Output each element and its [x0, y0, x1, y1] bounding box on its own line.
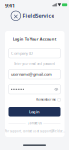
staticText: 9:41: [5, 2, 15, 9]
staticText: For support, contact us at support@field…: [5, 129, 64, 133]
staticText: Remember me: [36, 98, 56, 101]
staticText: Login: [29, 109, 40, 114]
button[interactable]: Remember me: [36, 98, 60, 101]
button[interactable]: Show password: [55, 88, 58, 91]
button[interactable]: Login: [8, 107, 60, 116]
staticText: Contact Us: [27, 121, 41, 125]
staticText: Enter your email and password: [14, 62, 55, 66]
staticText: username@gmail.com: [11, 72, 52, 77]
staticText: FieldService: [22, 12, 54, 19]
button[interactable]: Contact Us: [27, 121, 41, 125]
staticText: Company ID: [11, 51, 33, 56]
staticText: Login To Your Account: [13, 36, 57, 42]
